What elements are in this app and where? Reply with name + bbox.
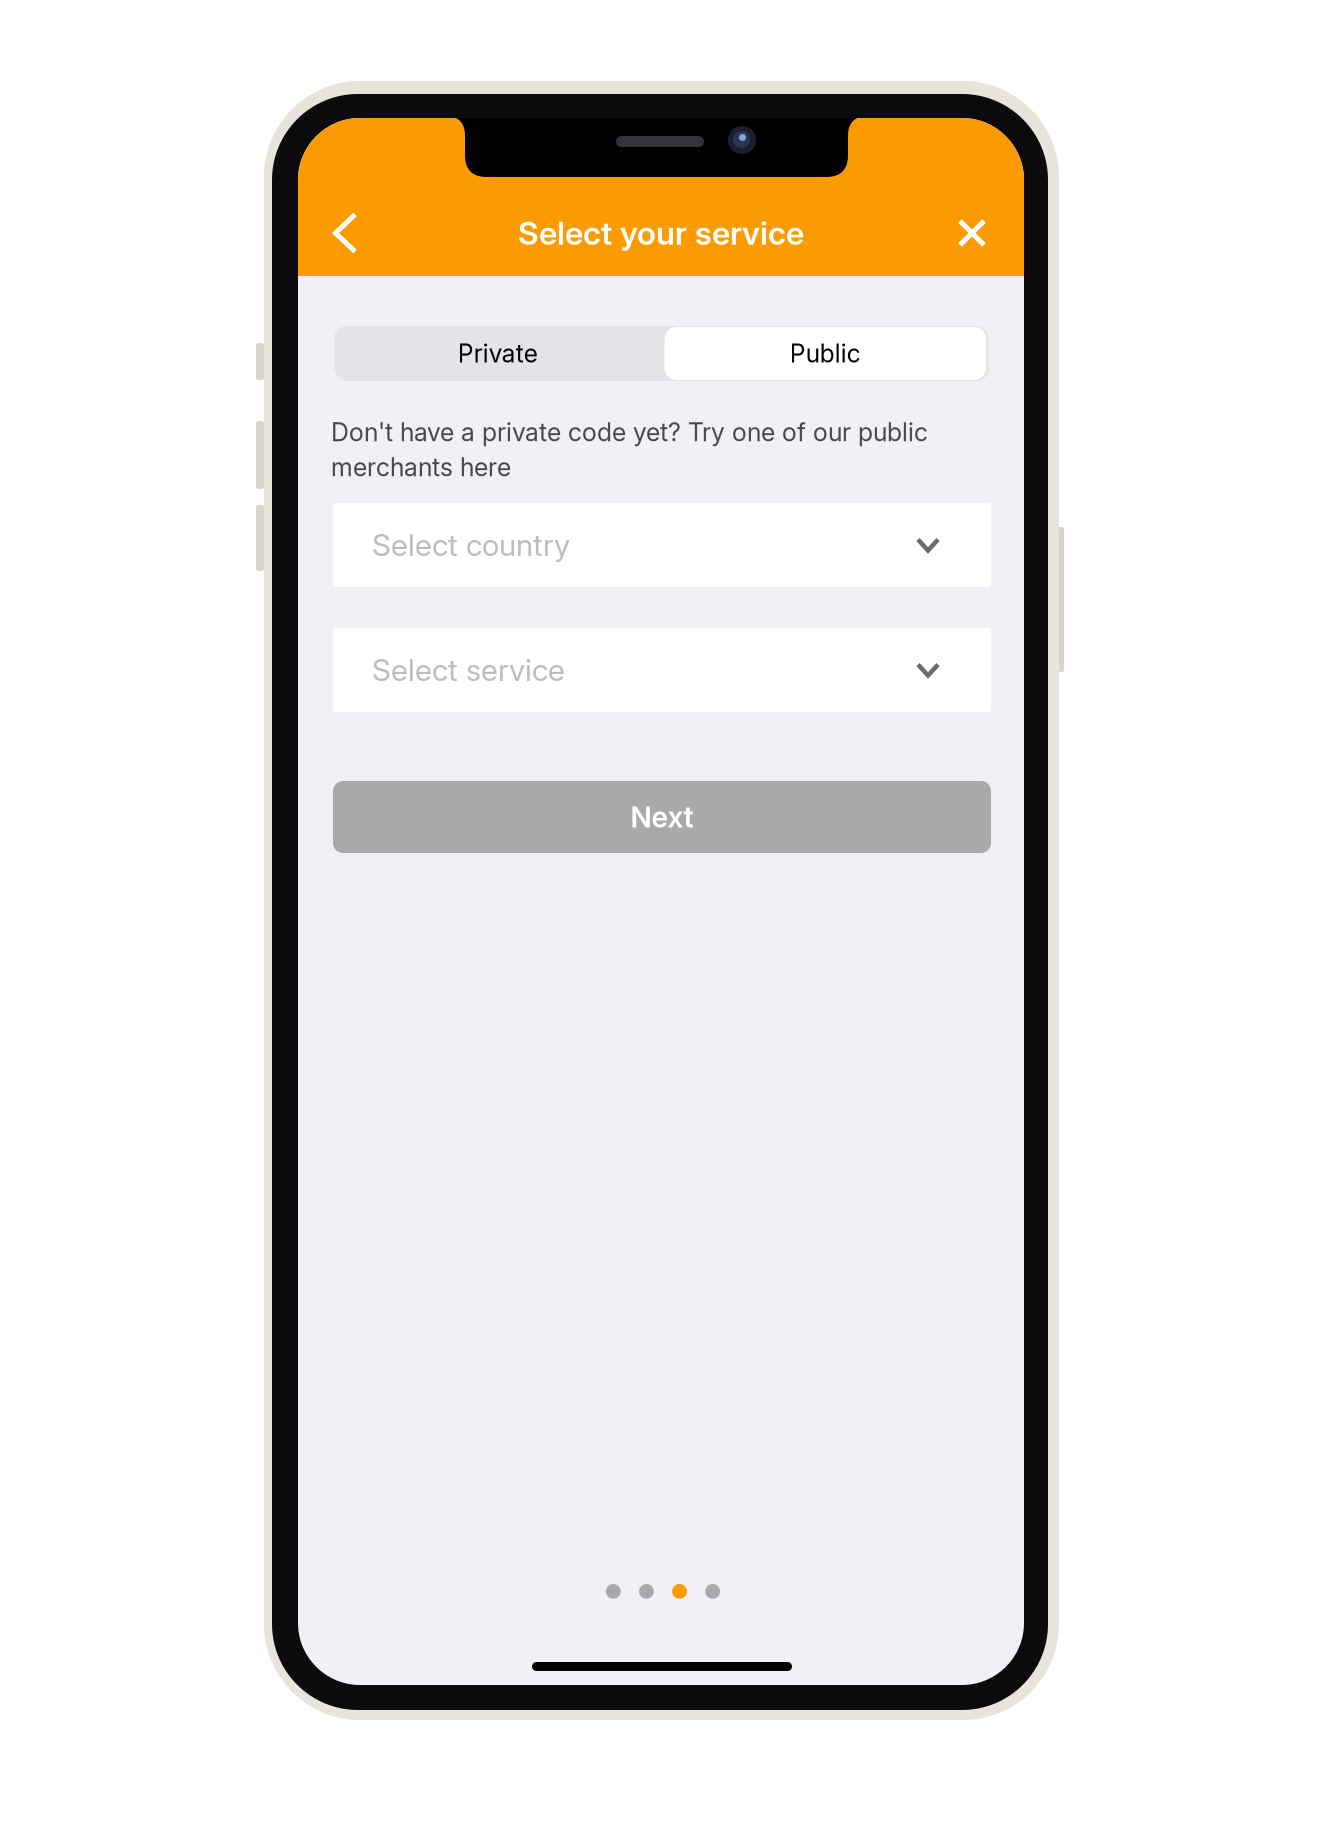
staticText: Next bbox=[630, 800, 693, 834]
staticText: Select your service bbox=[518, 214, 804, 252]
button[interactable]: Public bbox=[661, 326, 989, 381]
button[interactable]: Next bbox=[333, 781, 991, 853]
button[interactable]: Private bbox=[334, 326, 661, 381]
button[interactable]: Back bbox=[308, 194, 382, 272]
button[interactable]: Select country bbox=[333, 503, 991, 587]
button[interactable]: Select service bbox=[333, 628, 991, 712]
staticText: merchants here bbox=[331, 452, 511, 482]
button[interactable]: Close bbox=[935, 194, 1009, 272]
staticText: Private bbox=[458, 339, 538, 368]
staticText: Select service bbox=[372, 652, 565, 688]
staticText: Select country bbox=[372, 527, 570, 563]
staticText: Public bbox=[790, 339, 861, 368]
staticText: Don't have a private code yet? Try one o… bbox=[331, 417, 928, 447]
